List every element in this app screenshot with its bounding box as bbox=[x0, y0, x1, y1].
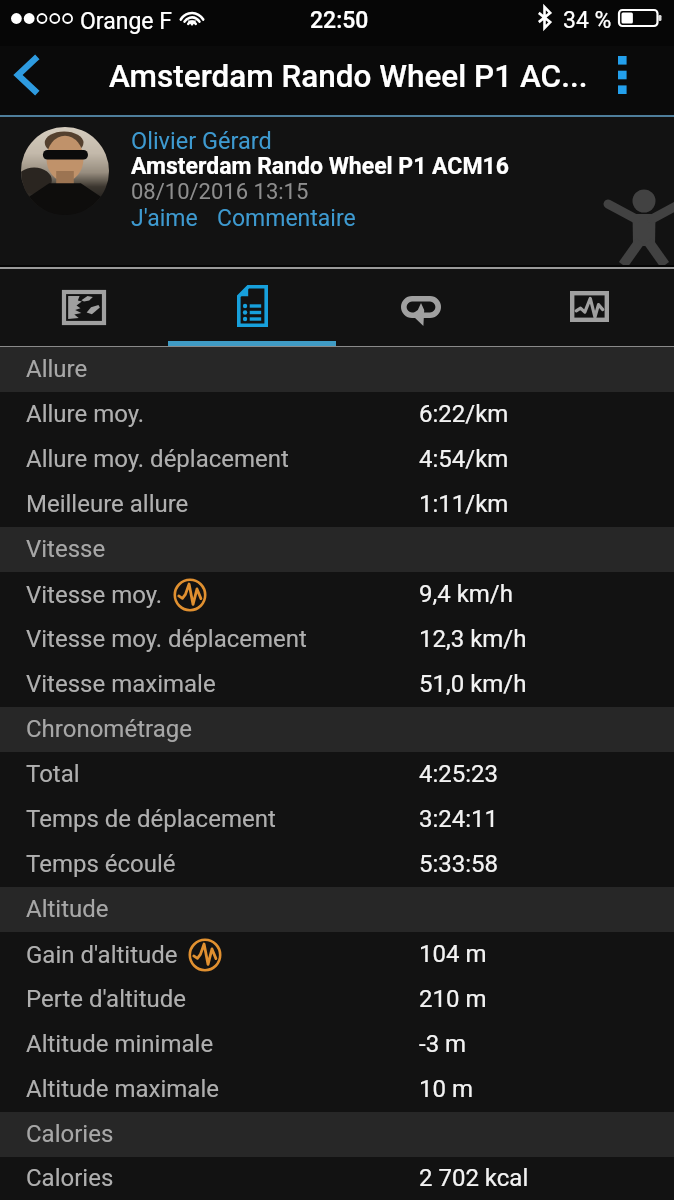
button[interactable]: Allure moy. bbox=[0, 392, 674, 437]
staticText: 2 702 kcal bbox=[419, 1164, 529, 1192]
staticText: Perte d'altitude bbox=[26, 985, 187, 1013]
staticText: Vitesse bbox=[26, 535, 106, 563]
button[interactable]: Vitesse moy. bbox=[0, 572, 674, 617]
staticText: 51,0 km/h bbox=[419, 670, 527, 698]
staticText: Altitude bbox=[26, 895, 109, 923]
staticText: -3 m bbox=[419, 1030, 467, 1058]
button[interactable]: Altitude minimale bbox=[0, 1022, 674, 1067]
staticText: 12,3 km/h bbox=[419, 625, 527, 653]
staticText: 6:22/km bbox=[419, 400, 509, 428]
button[interactable]: Back bbox=[0, 46, 58, 110]
staticText: Altitude maximale bbox=[26, 1075, 219, 1103]
button[interactable]: More options bbox=[609, 46, 674, 110]
staticText: Meilleure allure bbox=[26, 490, 189, 518]
staticText: 9,4 km/h bbox=[419, 580, 513, 608]
button[interactable]: Details bbox=[168, 269, 336, 346]
staticText: Vitesse maximale bbox=[26, 670, 216, 698]
staticText: 1:11/km bbox=[419, 490, 509, 518]
staticText: Gain d'altitude bbox=[26, 941, 178, 969]
button[interactable]: Temps de déplacement bbox=[0, 797, 674, 842]
staticText: Temps écoulé bbox=[26, 850, 176, 878]
button[interactable]: Vitesse moy. déplacement bbox=[0, 617, 674, 662]
button[interactable]: Chart bbox=[505, 269, 674, 346]
staticText: Commentaire bbox=[217, 205, 356, 231]
staticText: Allure moy. bbox=[26, 400, 145, 428]
staticText: Temps de déplacement bbox=[26, 805, 276, 833]
staticText: 4:54/km bbox=[419, 445, 509, 473]
button[interactable]: Map bbox=[0, 269, 168, 346]
button[interactable]: Vitesse maximale bbox=[0, 662, 674, 707]
staticText: 5:33:58 bbox=[419, 850, 499, 878]
staticText: J'aime bbox=[131, 205, 198, 231]
staticText: 34 % bbox=[563, 7, 612, 34]
staticText: 22:50 bbox=[310, 7, 369, 34]
staticText: Orange F bbox=[80, 8, 172, 35]
staticText: 210 m bbox=[419, 985, 487, 1013]
button[interactable]: Temps écoulé bbox=[0, 842, 674, 887]
button[interactable]: Altitude maximale bbox=[0, 1067, 674, 1112]
staticText: 10 m bbox=[419, 1075, 473, 1103]
button[interactable]: Total bbox=[0, 752, 674, 797]
staticText: Vitesse moy. déplacement bbox=[26, 625, 307, 653]
staticText: 08/10/2016 13:15 bbox=[131, 179, 309, 205]
button[interactable]: Perte d'altitude bbox=[0, 977, 674, 1022]
staticText: Chronométrage bbox=[26, 715, 192, 743]
staticText: 104 m bbox=[419, 940, 487, 968]
button[interactable]: Gain d'altitude bbox=[0, 932, 674, 977]
staticText: Amsterdam Rando Wheel P1 AC... bbox=[109, 58, 588, 95]
staticText: Allure bbox=[26, 355, 88, 383]
staticText: Olivier Gérard bbox=[131, 127, 272, 153]
button[interactable]: Meilleure allure bbox=[0, 482, 674, 527]
staticText: Calories bbox=[26, 1120, 114, 1148]
button[interactable]: Laps bbox=[336, 269, 505, 346]
staticText: 4:25:23 bbox=[419, 760, 499, 788]
staticText: Calories bbox=[26, 1164, 114, 1192]
staticText: 3:24:11 bbox=[419, 805, 499, 833]
button[interactable]: Commentaire bbox=[217, 205, 356, 231]
staticText: Amsterdam Rando Wheel P1 ACM16 bbox=[131, 153, 509, 179]
button[interactable]: Calories bbox=[0, 1157, 674, 1200]
staticText: Total bbox=[26, 760, 80, 788]
staticText: Altitude minimale bbox=[26, 1030, 214, 1058]
staticText: Vitesse moy. bbox=[26, 581, 163, 609]
button[interactable]: J'aime bbox=[131, 205, 198, 231]
button[interactable]: Allure moy. déplacement bbox=[0, 437, 674, 482]
staticText: Allure moy. déplacement bbox=[26, 445, 289, 473]
